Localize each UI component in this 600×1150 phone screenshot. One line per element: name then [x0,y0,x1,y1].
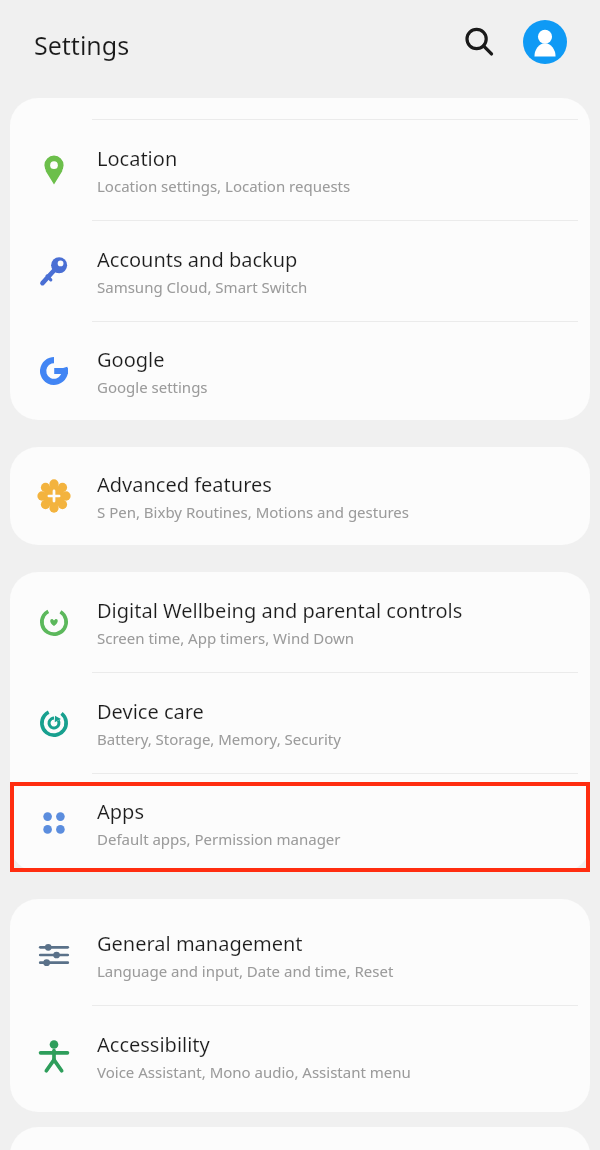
staticText: Samsung Cloud, Smart Switch [97,277,308,297]
staticText: S Pen, Bixby Routines, Motions and gestu… [97,502,409,522]
staticText: Language and input, Date and time, Reset [97,961,394,981]
staticText: Location [97,145,178,172]
staticText: Battery, Storage, Memory, Security [97,729,341,749]
button[interactable]: Advanced features [10,447,590,545]
staticText: Advanced features [97,471,272,498]
staticText: Apps [97,798,144,825]
button[interactable]: Apps [10,774,590,872]
staticText: General management [97,930,303,957]
staticText: Device care [97,698,204,725]
button[interactable]: Digital Wellbeing and parental controls [10,572,590,672]
button[interactable]: Accounts and backup [10,221,590,321]
button[interactable]: Account [518,15,572,69]
button[interactable]: Google [10,322,590,420]
staticText: Google [97,346,165,373]
button[interactable]: General management [10,905,590,1005]
staticText: Voice Assistant, Mono audio, Assistant m… [97,1062,411,1082]
staticText: Screen time, App timers, Wind Down [97,628,355,648]
staticText: Accounts and backup [97,246,298,273]
button[interactable]: Search [452,15,506,69]
staticText: Accessibility [97,1031,210,1058]
button[interactable]: Location [10,120,590,220]
staticText: Google settings [97,377,208,397]
staticText: Location settings, Location requests [97,176,351,196]
staticText: Default apps, Permission manager [97,829,341,849]
staticText: Settings [34,28,130,62]
staticText: Digital Wellbeing and parental controls [97,597,463,624]
button[interactable]: Device care [10,673,590,773]
button[interactable]: Accessibility [10,1006,590,1106]
button[interactable]: Apps [10,782,590,872]
